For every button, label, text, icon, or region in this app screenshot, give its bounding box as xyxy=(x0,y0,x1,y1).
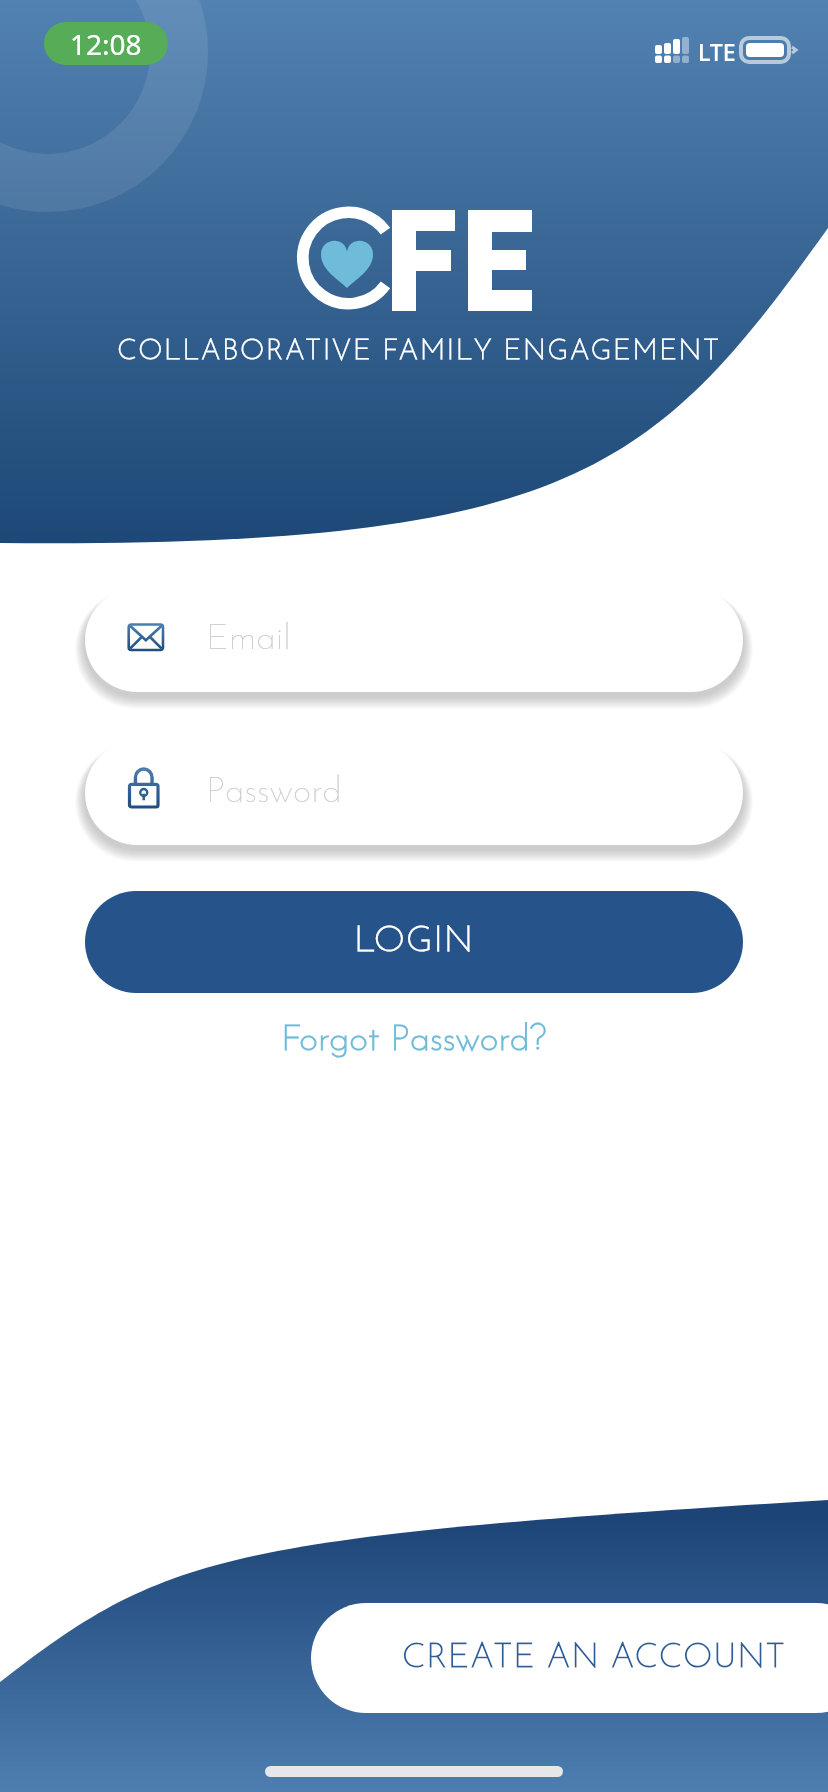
button[interactable]: Password icon xyxy=(85,741,743,845)
button[interactable]: LOGIN xyxy=(85,891,743,993)
button[interactable]: Forgot Password? xyxy=(264,1011,564,1069)
staticText: Forgot Password? xyxy=(281,1022,547,1059)
staticText: CREATE AN ACCOUNT xyxy=(402,1641,786,1675)
button[interactable]: CREATE AN ACCOUNT xyxy=(311,1603,828,1713)
other: Password icon xyxy=(85,741,743,845)
staticText: LOGIN xyxy=(354,924,474,960)
staticText: LTE xyxy=(698,36,736,67)
button[interactable]: Email icon xyxy=(85,588,743,692)
staticText: Password xyxy=(206,775,342,811)
staticText: 12:08 xyxy=(70,25,142,63)
staticText: Email xyxy=(206,622,291,658)
staticText: COLLABORATIVE FAMILY ENGAGEMENT xyxy=(5,338,828,1792)
other: Email icon xyxy=(85,588,743,692)
